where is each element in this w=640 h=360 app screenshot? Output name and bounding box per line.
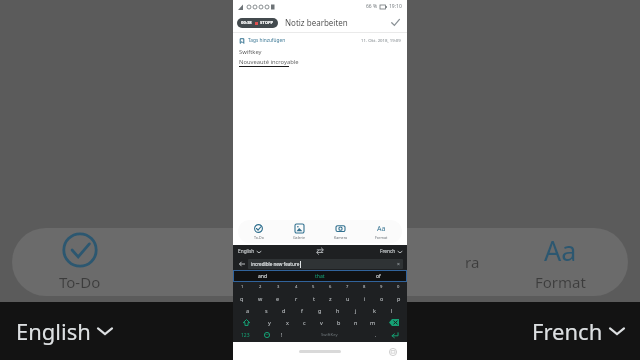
button[interactable]: w [251,292,269,304]
button[interactable]: x [278,316,296,328]
staticText: v [320,319,323,326]
button[interactable]: 7 [339,282,356,292]
staticText: 66 % [366,3,378,10]
button[interactable]: g [311,304,329,316]
button[interactable]: Galerie [279,220,320,243]
button[interactable]: English [238,248,261,255]
button[interactable]: Tastatur ausblenden [388,347,397,356]
staticText: 8 [363,284,366,290]
button[interactable]: f [293,304,311,316]
button[interactable]: e [269,292,287,304]
button[interactable]: 3 [269,282,287,292]
button[interactable]: o [373,292,390,304]
button[interactable]: Tags hinzufügen [239,37,286,44]
button[interactable]: k [365,304,383,316]
button[interactable]: To-Do [238,220,279,243]
button[interactable]: d [275,304,293,316]
button[interactable]: French [380,248,402,255]
staticText: j [355,307,357,314]
button[interactable]: Kamera [320,220,361,243]
button[interactable]: b [330,316,347,328]
button[interactable]: c [296,316,313,328]
staticText: Nouveauté incroyable [239,58,299,66]
staticText: r [295,295,298,302]
button[interactable]: Sprachen tauschen [315,246,325,256]
button[interactable]: y [260,316,278,328]
staticText: 19:10 [389,3,402,10]
button[interactable]: To-Do [0,228,160,296]
button[interactable]: p [390,292,407,304]
button[interactable]: of [349,270,407,282]
button[interactable]: Aa [480,228,640,296]
staticText: French [380,248,396,255]
button[interactable]: a [239,304,257,316]
staticText: o [380,295,384,302]
button[interactable]: m [364,316,381,328]
button[interactable]: s [257,304,275,316]
staticText: of [376,273,381,280]
button[interactable]: 123 [233,328,258,342]
staticText: × [397,261,400,268]
staticText: 3 [277,284,280,290]
button[interactable]: Aa [361,220,402,243]
button[interactable]: ! [275,328,289,342]
button[interactable]: Speichern [388,15,403,30]
staticText: English [238,248,255,255]
button[interactable]: q [233,292,251,304]
staticText: m [370,319,376,326]
staticText: Galerie [293,235,306,240]
button[interactable]: r [287,292,305,304]
button[interactable]: Umschalt [233,316,260,328]
button[interactable]: French [532,316,624,346]
button[interactable]: 0 [390,282,407,292]
button[interactable]: j [347,304,365,316]
button[interactable]: 00:38 [237,18,278,28]
staticText: k [373,307,376,314]
button[interactable]: . [369,328,383,342]
button[interactable]: 1 [233,282,251,292]
button[interactable]: English [16,316,112,346]
button[interactable]: l [383,304,401,316]
button[interactable]: v [313,316,330,328]
button[interactable]: incredible new feature [248,259,403,269]
staticText: Format [375,235,388,240]
staticText: b [337,319,341,326]
button[interactable]: 6 [322,282,339,292]
staticText: English [16,316,91,346]
button[interactable]: i [356,292,373,304]
staticText: 4 [295,284,298,290]
button[interactable]: z [322,292,339,304]
button[interactable]: 2 [251,282,269,292]
staticText: 6 [329,284,332,290]
staticText: Swiftkey [239,48,262,56]
button[interactable]: Startbildschirm [299,350,341,353]
staticText: SwiftKey [321,332,338,338]
staticText: Tags hinzufügen [248,37,286,44]
staticText: 123 [241,332,250,339]
staticText: z [329,295,332,302]
button[interactable]: n [347,316,364,328]
button[interactable]: 4 [287,282,305,292]
button[interactable]: h [329,304,347,316]
button[interactable]: and [233,270,291,282]
button[interactable]: u [339,292,356,304]
button[interactable]: Emoji [258,328,275,342]
button[interactable]: t [305,292,322,304]
staticText: w [258,295,263,302]
button[interactable]: 9 [373,282,390,292]
button[interactable]: 8 [356,282,373,292]
staticText: STOPP [260,20,274,26]
button[interactable]: 5 [305,282,322,292]
button[interactable]: Löschen [381,316,407,328]
button[interactable]: that [291,270,349,282]
staticText: Notiz bearbeiten [285,17,348,28]
button[interactable]: Leertaste [289,328,369,342]
staticText: 9 [380,284,383,290]
staticText: ! [281,332,283,339]
staticText: n [354,319,358,326]
staticText: e [276,295,280,302]
button[interactable]: Eingabe [383,328,407,342]
staticText: p [397,295,401,302]
staticText: y [268,319,271,326]
button[interactable]: Zurück [237,259,246,268]
